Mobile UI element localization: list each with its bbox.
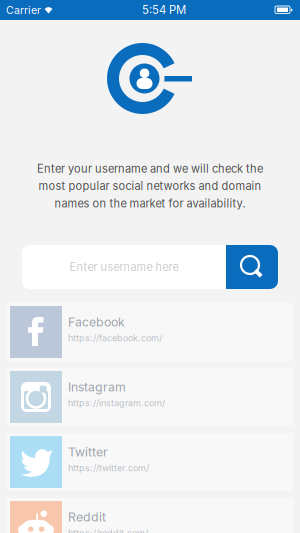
staticText: Enter your username and we will check th… [37,162,263,175]
button[interactable]: Twitter [7,433,293,491]
staticText: most popular social networks and domain [38,179,261,193]
staticText: https://instagram.com/ [68,397,165,408]
staticText: Reddit [68,510,106,524]
staticText: Instagram [68,380,126,394]
staticText: https://facebook.com/ [68,332,162,343]
staticText: Carrier [6,3,41,16]
staticText: Twitter [68,445,108,459]
button[interactable]: Instagram [7,368,293,426]
button[interactable]: Facebook [7,303,293,361]
staticText: 5:54 PM [142,3,186,17]
staticText: names on the market for availability. [54,197,245,210]
staticText: https://reddit.com/ [68,527,148,533]
staticText: https://twitter.com/ [68,462,149,473]
staticText: Facebook [68,315,125,329]
staticText: Enter username here [69,260,178,274]
button[interactable]: Search [226,245,278,289]
button[interactable]: Reddit [7,498,293,533]
